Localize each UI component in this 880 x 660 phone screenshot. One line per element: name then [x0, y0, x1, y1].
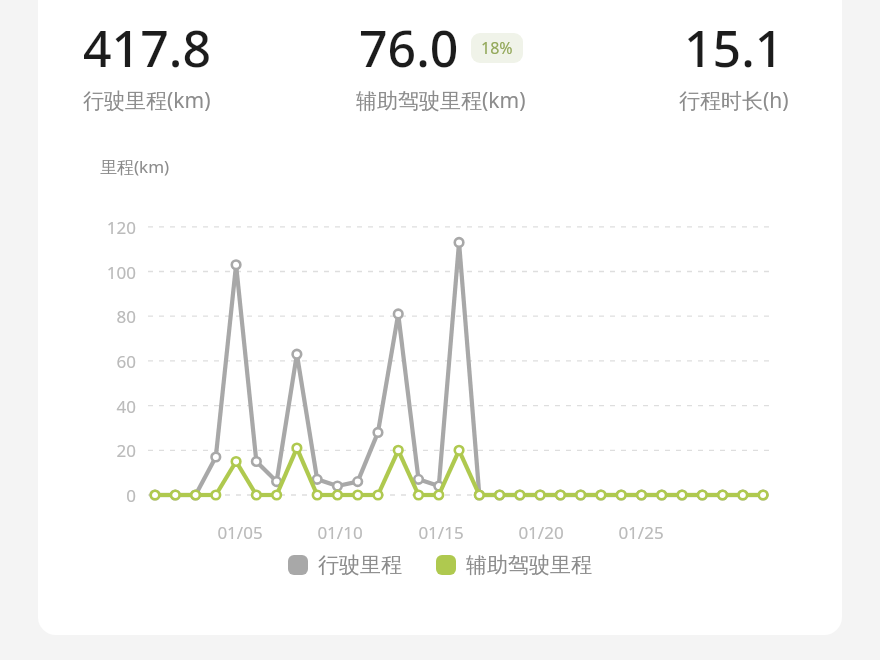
button[interactable]: 辅助驾驶里程 [436, 552, 592, 578]
staticText: 120 [76, 216, 136, 239]
staticText: 40 [76, 395, 136, 418]
staticText: 01/05 [195, 521, 285, 544]
staticText: 01/25 [596, 521, 686, 544]
button[interactable]: 行驶里程 [288, 552, 402, 578]
staticText: 20 [76, 439, 136, 462]
staticText: 01/20 [496, 521, 586, 544]
button[interactable]: 15.1 [587, 14, 880, 115]
staticText: 01/10 [295, 521, 385, 544]
staticText: 01/15 [396, 521, 486, 544]
staticText: 行驶里程 [318, 552, 402, 578]
staticText: 100 [76, 261, 136, 284]
staticText: 76.0 [359, 14, 459, 82]
staticText: 15.1 [684, 14, 784, 82]
staticText: 行驶里程(km) [83, 86, 211, 115]
button[interactable]: 76.0 [294, 14, 587, 115]
staticText: 辅助驾驶里程(km) [356, 86, 526, 115]
staticText: 辅助驾驶里程 [466, 552, 592, 578]
staticText: 18% [481, 37, 513, 59]
button[interactable]: 417.8 [0, 14, 294, 115]
staticText: 行程时长(h) [679, 86, 789, 115]
staticText: 80 [76, 305, 136, 328]
staticText: 里程(km) [100, 155, 170, 178]
staticText: 60 [76, 350, 136, 373]
staticText: 0 [76, 484, 136, 507]
staticText: 417.8 [83, 14, 211, 82]
